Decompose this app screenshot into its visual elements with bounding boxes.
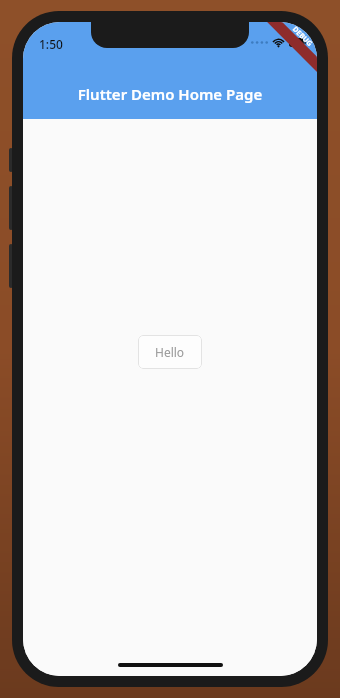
- staticText: Flutter Demo Home Page: [23, 84, 317, 104]
- button[interactable]: Hello: [138, 335, 202, 369]
- staticText: DEBUG: [290, 25, 315, 49]
- staticText: Hello: [155, 344, 185, 360]
- staticText: 1:50: [39, 36, 63, 52]
